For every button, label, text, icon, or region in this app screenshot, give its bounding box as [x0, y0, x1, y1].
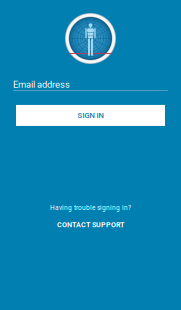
- staticText: CONTACT SUPPORT: [57, 221, 124, 229]
- staticText: Having trouble signing in?: [50, 204, 131, 212]
- button[interactable]: CONTACT SUPPORT: [57, 221, 124, 229]
- staticText: Email address: [13, 79, 70, 90]
- button[interactable]: SIGN IN: [16, 105, 165, 126]
- button[interactable]: Having trouble signing in?: [50, 204, 131, 212]
- staticText: SIGN IN: [77, 111, 103, 120]
